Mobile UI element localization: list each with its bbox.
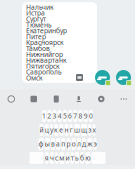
button[interactable]: 9: [84, 110, 88, 122]
button[interactable]: 1: [42, 110, 46, 122]
button[interactable]: More: [112, 89, 135, 109]
staticText: и: [65, 154, 69, 162]
staticText: у: [50, 126, 53, 134]
button[interactable]: л: [77, 138, 81, 150]
button[interactable]: ц: [45, 124, 49, 136]
button[interactable]: я: [45, 152, 49, 164]
button[interactable]: Clipboard: [45, 89, 67, 109]
button[interactable]: Sticker: [74, 72, 85, 83]
button[interactable]: Shift: [29, 152, 43, 164]
button[interactable]: а: [56, 138, 60, 150]
button[interactable]: с: [55, 152, 58, 164]
staticText: ч: [50, 154, 54, 162]
button[interactable]: Emoji: [0, 89, 22, 109]
staticText: п: [61, 140, 65, 148]
button[interactable]: м: [59, 152, 64, 164]
button[interactable]: Send: [94, 69, 111, 86]
button[interactable]: ю: [85, 152, 90, 164]
button[interactable]: ь: [75, 152, 79, 164]
staticText: Нижвартанк: [26, 56, 67, 65]
button[interactable]: 3: [52, 110, 56, 122]
staticText: Нальчик: [26, 3, 54, 12]
staticText: ж: [87, 140, 92, 148]
staticText: 2: [47, 112, 51, 120]
button[interactable]: щ: [81, 124, 87, 136]
button[interactable]: б: [80, 152, 84, 164]
button[interactable]: о: [72, 138, 76, 150]
button[interactable]: т: [71, 152, 74, 164]
staticText: з: [88, 126, 91, 134]
staticText: г: [70, 126, 73, 134]
staticText: щ: [81, 126, 87, 134]
button[interactable]: ы: [45, 138, 50, 150]
button[interactable]: е: [59, 124, 63, 136]
button[interactable]: Voice input: [67, 89, 90, 109]
staticText: 9: [84, 112, 88, 120]
staticText: л: [77, 140, 81, 148]
button[interactable]: Stickers: [22, 89, 45, 109]
button[interactable]: 8: [78, 110, 82, 122]
staticText: Омск: [26, 73, 43, 82]
staticText: с: [55, 154, 58, 162]
button[interactable]: 7: [73, 110, 77, 122]
button[interactable]: д: [82, 138, 86, 150]
staticText: Тамбов: [26, 44, 50, 53]
staticText: Сургут: [26, 14, 46, 23]
staticText: а: [56, 140, 60, 148]
staticText: Тюмень: [26, 20, 52, 29]
button[interactable]: р: [66, 138, 70, 150]
button[interactable]: 0: [89, 110, 93, 122]
staticText: 3: [52, 112, 56, 120]
staticText: 7: [73, 112, 77, 120]
staticText: ц: [45, 126, 49, 134]
staticText: ш: [74, 126, 80, 134]
staticText: х: [92, 126, 95, 134]
button[interactable]: ч: [50, 152, 54, 164]
staticText: к: [54, 126, 58, 134]
staticText: й: [39, 126, 43, 134]
staticText: о: [72, 140, 76, 148]
button[interactable]: п: [61, 138, 65, 150]
button[interactable]: н: [64, 124, 68, 136]
staticText: э: [93, 140, 96, 148]
staticText: р: [66, 140, 70, 148]
staticText: Красноярск: [26, 38, 64, 47]
staticText: ф: [38, 140, 43, 148]
staticText: Питер: [26, 32, 46, 41]
button[interactable]: х: [92, 124, 95, 136]
button[interactable]: у: [50, 124, 53, 136]
staticText: я: [45, 154, 49, 162]
button[interactable]: ф: [38, 138, 43, 150]
staticText: Саврополь: [26, 68, 62, 76]
staticText: 5: [63, 112, 67, 120]
button[interactable]: в: [51, 138, 55, 150]
button[interactable]: Settings: [90, 89, 112, 109]
button[interactable]: з: [88, 124, 91, 136]
staticText: ь: [75, 154, 79, 162]
staticText: Пятигорск: [26, 62, 60, 71]
staticText: 8: [78, 112, 82, 120]
button[interactable]: й: [39, 124, 43, 136]
staticText: б: [80, 154, 84, 162]
staticText: 0: [89, 112, 93, 120]
button[interactable]: ш: [74, 124, 80, 136]
staticText: е: [59, 126, 63, 134]
staticText: ю: [85, 154, 90, 162]
staticText: Нижнийгор: [26, 50, 63, 59]
staticText: 4: [58, 112, 62, 120]
button[interactable]: г: [70, 124, 73, 136]
button[interactable]: Send: [115, 69, 132, 86]
staticText: н: [64, 126, 68, 134]
button[interactable]: ж: [87, 138, 92, 150]
button[interactable]: 5: [63, 110, 67, 122]
button[interactable]: э: [93, 138, 96, 150]
staticText: т: [71, 154, 74, 162]
staticText: м: [59, 154, 64, 162]
button[interactable]: 2: [47, 110, 51, 122]
button[interactable]: к: [54, 124, 58, 136]
button[interactable]: Backspace: [91, 152, 105, 164]
button[interactable]: 4: [58, 110, 62, 122]
button[interactable]: 6: [68, 110, 72, 122]
staticText: ы: [45, 140, 50, 148]
button[interactable]: и: [65, 152, 69, 164]
